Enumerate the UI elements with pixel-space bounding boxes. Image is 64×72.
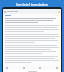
button[interactable]: See brief translation bbox=[0, 0, 64, 7]
button[interactable]: Back bbox=[4, 9, 60, 14]
staticText: See brief translation bbox=[16, 2, 48, 6]
